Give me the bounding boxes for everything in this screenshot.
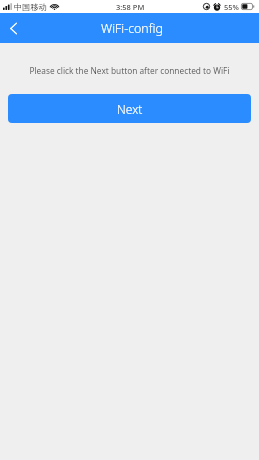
staticText: WiFi-config [101,20,163,37]
staticText: Please click the Next button after conne… [0,65,259,76]
staticText: 中国移动 [14,2,47,12]
staticText: 55% [224,2,239,12]
button[interactable]: Next [8,94,251,123]
staticText: Next [117,101,143,117]
button[interactable]: Back [2,13,24,43]
staticText: 3:58 PM [116,2,145,12]
